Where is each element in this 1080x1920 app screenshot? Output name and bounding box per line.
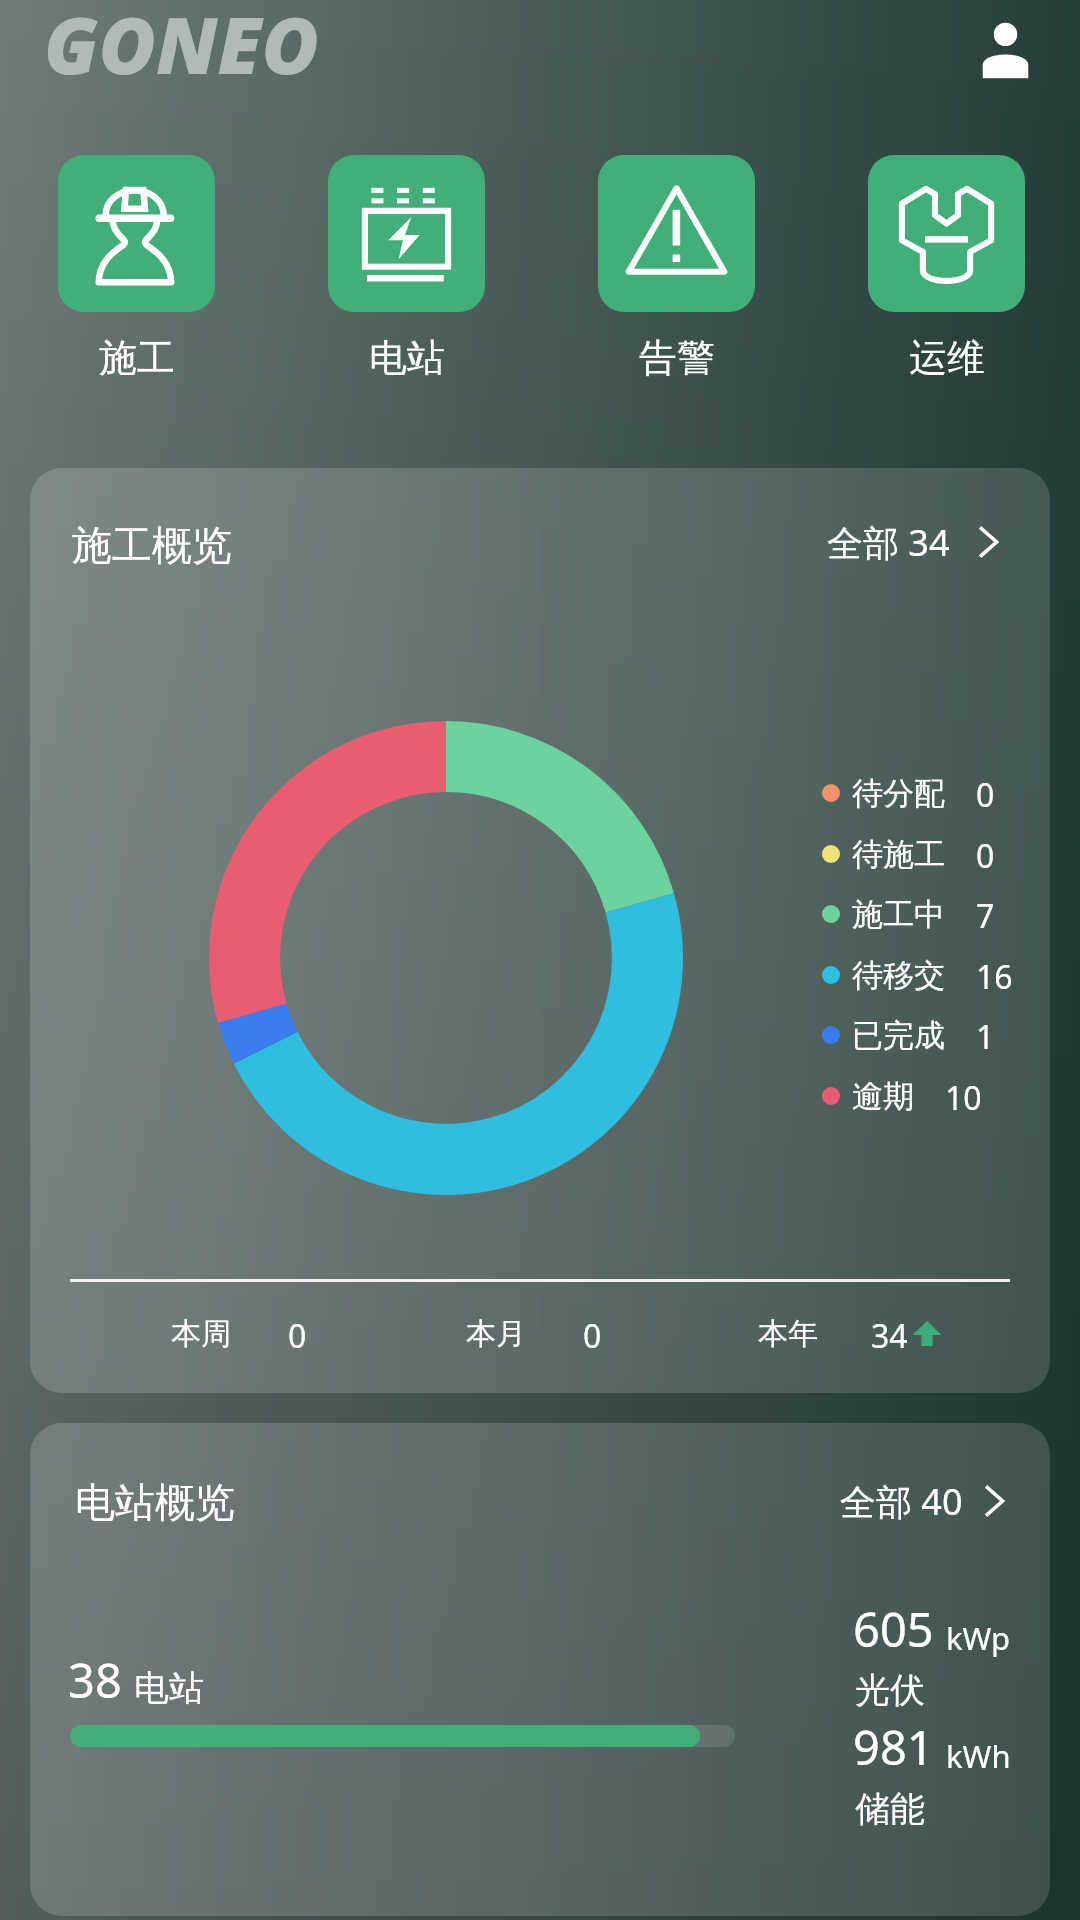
- staticText: 38: [68, 1648, 122, 1712]
- button[interactable]: 全部 40: [840, 1469, 1014, 1533]
- button[interactable]: 已完成: [821, 1009, 1050, 1061]
- button[interactable]: 全部 34: [827, 510, 1008, 574]
- staticText: 运维: [909, 334, 985, 382]
- staticText: 电站: [369, 334, 445, 382]
- staticText: GONEO: [44, 0, 319, 97]
- staticText: 施工中: [852, 895, 945, 934]
- staticText: 电站: [134, 1666, 204, 1710]
- staticText: 605: [853, 1597, 934, 1661]
- staticText: 1: [976, 1015, 995, 1059]
- staticText: 储能: [855, 1787, 925, 1831]
- staticText: 0: [976, 773, 995, 817]
- staticText: 16: [976, 955, 1013, 999]
- button[interactable]: 待移交: [821, 949, 1050, 1001]
- staticText: 待施工: [852, 835, 945, 874]
- button[interactable]: 电站: [328, 155, 485, 382]
- staticText: 施工概览: [72, 520, 232, 570]
- staticText: 本月: [466, 1315, 526, 1353]
- staticText: 0: [583, 1314, 602, 1358]
- staticText: 光伏: [855, 1668, 925, 1712]
- staticText: 待分配: [852, 774, 945, 813]
- staticText: 7: [976, 894, 995, 938]
- staticText: 待移交: [852, 956, 945, 995]
- staticText: 34: [871, 1314, 908, 1358]
- staticText: kWh: [946, 1735, 1011, 1777]
- staticText: 全部 40: [840, 1477, 963, 1526]
- staticText: 981: [853, 1715, 934, 1779]
- staticText: kWp: [946, 1617, 1011, 1659]
- button[interactable]: 待分配: [821, 767, 1050, 819]
- staticText: 0: [288, 1314, 307, 1358]
- staticText: 已完成: [852, 1016, 945, 1055]
- button[interactable]: 待施工: [821, 828, 1050, 880]
- button[interactable]: Profile: [961, 8, 1049, 96]
- button[interactable]: 运维: [868, 155, 1025, 382]
- staticText: 施工: [99, 334, 175, 382]
- button[interactable]: 施工: [58, 155, 215, 382]
- staticText: 电站概览: [75, 1477, 235, 1527]
- staticText: 0: [976, 834, 995, 878]
- button[interactable]: 告警: [598, 155, 755, 382]
- button[interactable]: 逾期: [821, 1070, 1050, 1122]
- staticText: 本周: [171, 1315, 231, 1353]
- staticText: 10: [945, 1076, 982, 1120]
- staticText: 逾期: [852, 1077, 914, 1116]
- staticText: 全部 34: [827, 518, 950, 567]
- button[interactable]: 施工中: [821, 888, 1050, 940]
- staticText: 告警: [639, 334, 715, 382]
- staticText: 本年: [758, 1315, 818, 1353]
